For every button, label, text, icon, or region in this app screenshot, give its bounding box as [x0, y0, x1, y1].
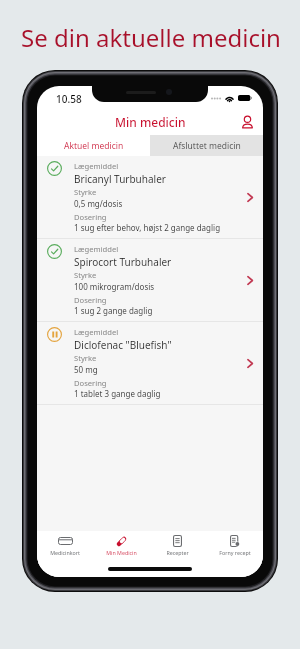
button[interactable]: Medicinkort	[37, 535, 93, 556]
staticText: Lægemiddel	[74, 244, 119, 254]
staticText: Afsluttet medicin	[173, 140, 241, 152]
button[interactable]: Lægemiddel	[37, 156, 263, 239]
staticText: Min Medicin	[106, 549, 137, 556]
staticText: Dosering	[74, 378, 107, 388]
staticText: Lægemiddel	[74, 161, 119, 171]
button[interactable]: Forny recept	[206, 535, 263, 556]
staticText: 1 tablet 3 gange daglig	[74, 388, 161, 399]
staticText: 0,5 mg/dosis	[74, 198, 123, 209]
staticText: Lægemiddel	[74, 327, 119, 337]
staticText: 1 sug efter behov, højst 2 gange daglig	[74, 222, 221, 233]
staticText: Styrke	[74, 187, 97, 197]
button[interactable]: Afsluttet medicin	[150, 135, 263, 156]
button[interactable]: Lægemiddel	[37, 239, 263, 322]
staticText: 1 sug 2 gange daglig	[74, 305, 153, 316]
button[interactable]: Lægemiddel	[37, 322, 263, 405]
staticText: 100 mikrogram/dosis	[74, 281, 155, 292]
staticText: Dosering	[74, 212, 107, 222]
staticText: Bricanyl Turbuhaler	[74, 172, 166, 186]
staticText: Aktuel medicin	[64, 140, 124, 152]
staticText: Dosering	[74, 295, 107, 305]
button[interactable]: Profil	[236, 111, 258, 133]
staticText: Styrke	[74, 353, 97, 363]
button[interactable]: Min Medicin	[93, 535, 149, 556]
button[interactable]: Recepter	[149, 535, 206, 556]
staticText: Recepter	[166, 549, 189, 556]
staticText: Styrke	[74, 270, 97, 280]
staticText: Se din aktuelle medicin	[21, 21, 281, 54]
staticText: Diclofenac "Bluefish"	[74, 338, 172, 352]
staticText: Spirocort Turbuhaler	[74, 255, 172, 269]
staticText: 10.58	[56, 92, 82, 106]
staticText: Forny recept	[219, 549, 251, 556]
staticText: Medicinkort	[50, 549, 80, 556]
button[interactable]: Aktuel medicin	[37, 135, 150, 156]
staticText: Min medicin	[115, 114, 186, 130]
staticText: 50 mg	[74, 364, 98, 375]
